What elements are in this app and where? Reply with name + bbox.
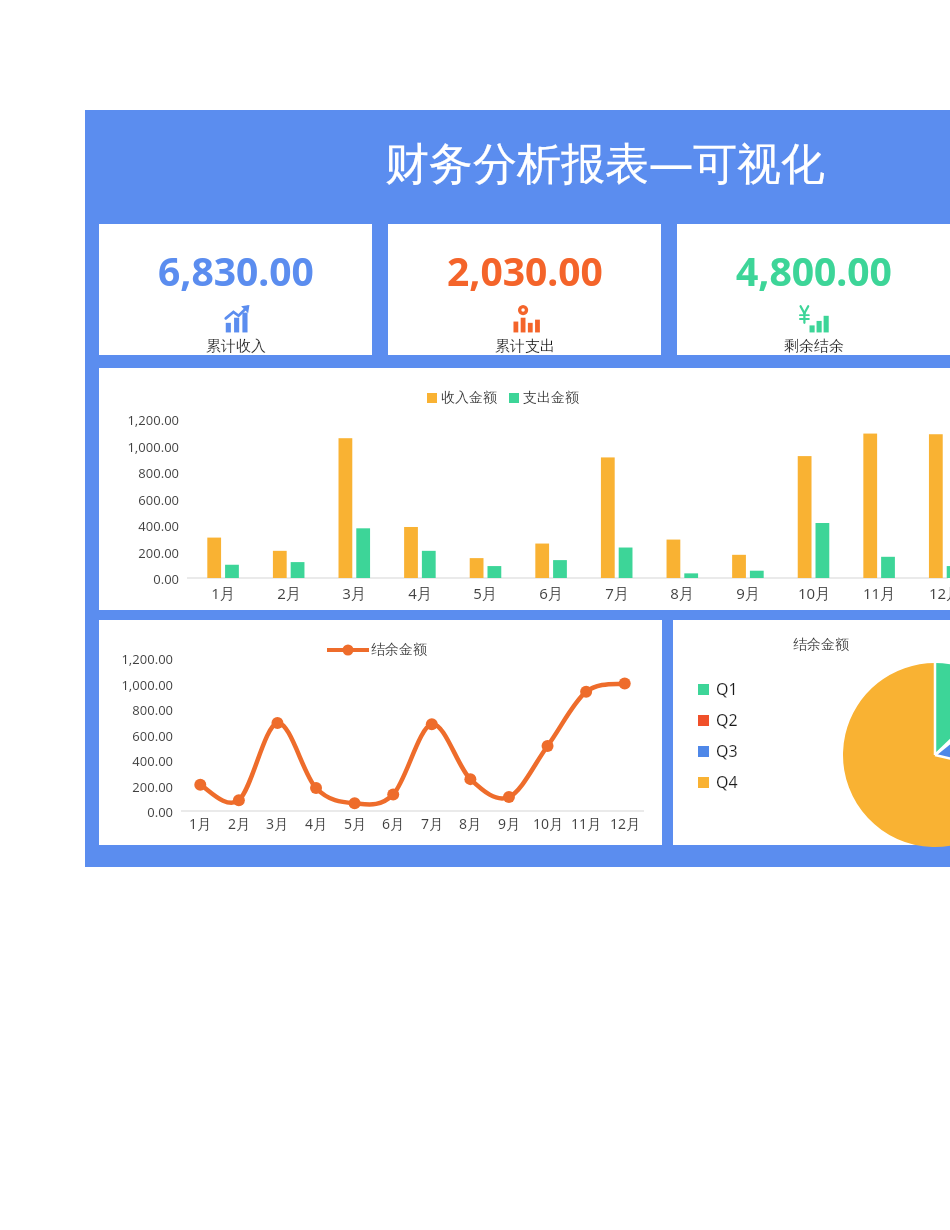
staticText: 累计收入 bbox=[206, 337, 266, 355]
button[interactable]: 6,830.00 bbox=[99, 224, 372, 355]
button[interactable]: 2,030.00 bbox=[388, 224, 661, 355]
staticText: 2,030.00 bbox=[447, 244, 603, 297]
staticText: Q2 bbox=[716, 709, 738, 731]
staticText: Q4 bbox=[716, 771, 738, 793]
staticText: 600.00 bbox=[107, 491, 179, 509]
staticText: 10月 bbox=[789, 583, 839, 603]
staticText: 财务分析报表—可视化 bbox=[385, 132, 825, 192]
staticText: 1月 bbox=[198, 583, 248, 603]
staticText: 200.00 bbox=[107, 544, 179, 562]
staticText: 400.00 bbox=[101, 752, 173, 770]
staticText: 4月 bbox=[294, 814, 338, 833]
staticText: 结余金额 bbox=[371, 641, 427, 659]
other: 累计收入 bbox=[220, 303, 252, 335]
staticText: 12月 bbox=[920, 583, 950, 603]
staticText: 11月 bbox=[854, 583, 904, 603]
staticText: 1,000.00 bbox=[101, 676, 173, 694]
staticText: 剩余结余 bbox=[784, 337, 844, 355]
staticText: 8月 bbox=[657, 583, 707, 603]
button[interactable]: 结余金额 bbox=[99, 620, 662, 845]
staticText: 6月 bbox=[371, 814, 415, 833]
staticText: 5月 bbox=[333, 814, 377, 833]
button[interactable]: Q3 bbox=[698, 740, 738, 762]
staticText: 收入金额 bbox=[441, 389, 497, 407]
staticText: 支出金额 bbox=[523, 389, 579, 407]
staticText: 3月 bbox=[255, 814, 299, 833]
staticText: 400.00 bbox=[107, 517, 179, 535]
button[interactable]: Q1 bbox=[698, 678, 738, 700]
button[interactable]: Q4 bbox=[698, 771, 738, 793]
staticText: 7月 bbox=[592, 583, 642, 603]
staticText: 11月 bbox=[564, 814, 608, 833]
staticText: 12月 bbox=[603, 814, 647, 833]
staticText: 9月 bbox=[487, 814, 531, 833]
button[interactable]: 结余金额 bbox=[673, 620, 950, 845]
button[interactable]: 4,800.00 bbox=[677, 224, 950, 355]
staticText: 6月 bbox=[526, 583, 576, 603]
staticText: 1,200.00 bbox=[107, 411, 179, 429]
staticText: 600.00 bbox=[101, 727, 173, 745]
other: 累计支出 bbox=[509, 303, 541, 335]
staticText: 0.00 bbox=[101, 803, 173, 821]
staticText: 2月 bbox=[217, 814, 261, 833]
staticText: 1,200.00 bbox=[101, 650, 173, 668]
staticText: 3月 bbox=[329, 583, 379, 603]
staticText: 1,000.00 bbox=[107, 438, 179, 456]
staticText: 9月 bbox=[723, 583, 773, 603]
staticText: 6,830.00 bbox=[158, 244, 314, 297]
button[interactable]: 收入金额 bbox=[99, 368, 950, 610]
staticText: 10月 bbox=[526, 814, 570, 833]
staticText: 7月 bbox=[410, 814, 454, 833]
staticText: 结余金额 bbox=[793, 636, 849, 654]
staticText: 800.00 bbox=[101, 701, 173, 719]
staticText: 800.00 bbox=[107, 464, 179, 482]
staticText: 1月 bbox=[178, 814, 222, 833]
staticText: Q3 bbox=[716, 740, 738, 762]
button[interactable]: 财务分析报表—可视化 bbox=[85, 110, 950, 214]
other: 剩余结余 bbox=[798, 303, 830, 335]
staticText: 5月 bbox=[460, 583, 510, 603]
button[interactable]: Q2 bbox=[698, 709, 738, 731]
staticText: 200.00 bbox=[101, 778, 173, 796]
staticText: 累计支出 bbox=[495, 337, 555, 355]
staticText: Q1 bbox=[716, 678, 738, 700]
staticText: 8月 bbox=[448, 814, 492, 833]
staticText: 4,800.00 bbox=[736, 244, 892, 297]
staticText: 2月 bbox=[264, 583, 314, 603]
staticText: 0.00 bbox=[107, 570, 179, 588]
staticText: 4月 bbox=[395, 583, 445, 603]
